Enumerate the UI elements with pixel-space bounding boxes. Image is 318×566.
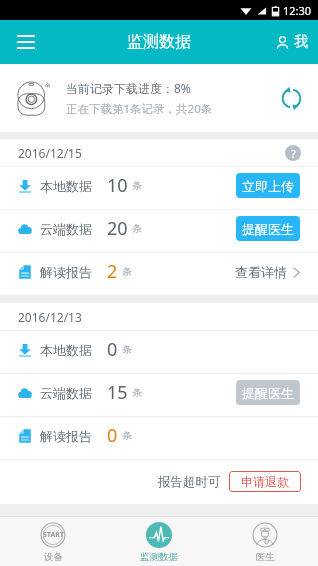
staticText: 本地数据 bbox=[40, 178, 92, 194]
staticText: 当前记录下载进度：8% bbox=[66, 80, 191, 96]
staticText: 条 bbox=[122, 265, 132, 278]
button[interactable]: 申请退款 bbox=[229, 471, 301, 492]
staticText: 我 bbox=[294, 33, 308, 51]
button[interactable]: 我 bbox=[275, 33, 308, 51]
staticText: 查看详情 bbox=[235, 264, 287, 280]
staticText: 提醒医生 bbox=[242, 221, 294, 237]
button[interactable]: 查看详情 bbox=[235, 264, 300, 280]
staticText: 20 bbox=[107, 216, 128, 241]
button[interactable]: 立即上传 bbox=[236, 173, 300, 198]
staticText: 条 bbox=[132, 179, 142, 192]
staticText: 条 bbox=[122, 343, 132, 356]
staticText: 2016/12/15 bbox=[18, 145, 82, 161]
staticText: 医生 bbox=[256, 551, 275, 563]
staticText: 解读报告 bbox=[40, 428, 92, 444]
button[interactable]: Refresh bbox=[276, 83, 306, 113]
staticText: 解读报告 bbox=[40, 264, 92, 280]
staticText: 本地数据 bbox=[40, 342, 92, 358]
staticText: 0 bbox=[107, 423, 118, 448]
button[interactable]: Menu bbox=[8, 24, 44, 60]
staticText: 报告超时可 bbox=[158, 474, 221, 490]
staticText: 条 bbox=[122, 429, 132, 442]
staticText: 条 bbox=[132, 386, 142, 399]
staticText: 云端数据 bbox=[40, 385, 92, 401]
button[interactable]: 提醒医生 bbox=[236, 216, 300, 241]
staticText: 12:30 bbox=[283, 3, 312, 18]
button[interactable]: Help bbox=[285, 145, 301, 161]
staticText: 立即上传 bbox=[242, 178, 294, 194]
staticText: 申请退款 bbox=[241, 474, 289, 489]
button[interactable]: START bbox=[0, 517, 106, 566]
staticText: START bbox=[43, 530, 64, 540]
staticText: 设备 bbox=[44, 551, 63, 563]
staticText: 2016/12/13 bbox=[18, 309, 82, 325]
staticText: 正在下载第1条记录，共20条 bbox=[66, 101, 213, 117]
staticText: 15 bbox=[107, 380, 128, 405]
button[interactable]: 医生 bbox=[212, 517, 318, 566]
staticText: 0 bbox=[107, 337, 118, 362]
button[interactable]: 监测数据 bbox=[106, 517, 212, 566]
staticText: 监测数据 bbox=[140, 551, 178, 563]
staticText: 条 bbox=[132, 222, 142, 235]
staticText: 监测数据 bbox=[127, 32, 191, 52]
staticText: 10 bbox=[107, 173, 128, 198]
button[interactable]: 提醒医生 bbox=[236, 380, 300, 405]
staticText: 2 bbox=[107, 259, 118, 284]
staticText: 云端数据 bbox=[40, 221, 92, 237]
staticText: 提醒医生 bbox=[242, 385, 294, 401]
staticText: ? bbox=[291, 146, 296, 161]
